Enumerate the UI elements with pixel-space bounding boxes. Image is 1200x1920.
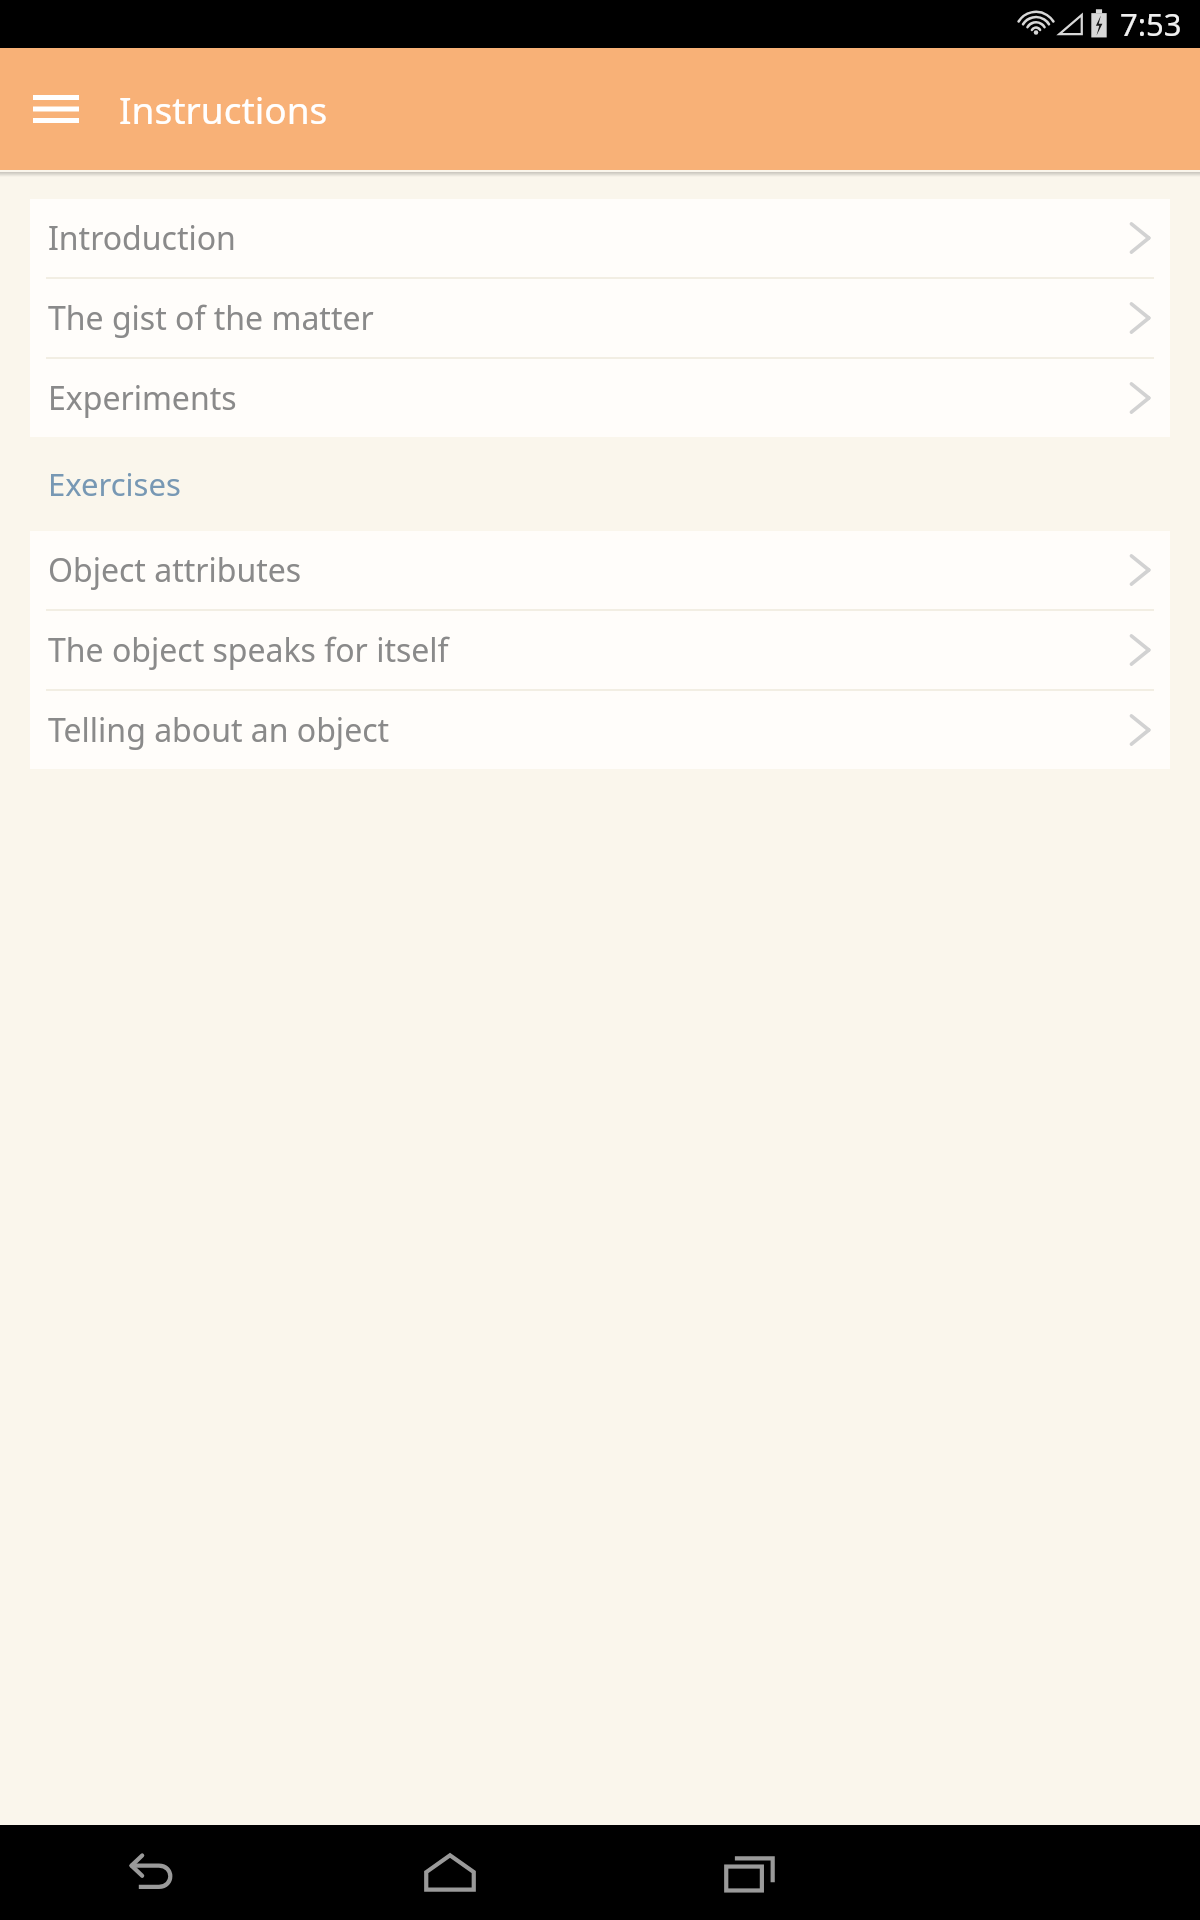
staticText: Experiments	[48, 376, 1126, 420]
button[interactable]: The gist of the matter	[30, 279, 1170, 357]
staticText: Telling about an object	[48, 708, 1126, 752]
button[interactable]: Recent apps	[600, 1825, 900, 1920]
staticText: 7:53	[1120, 3, 1182, 45]
staticText: The object speaks for itself	[48, 628, 1126, 672]
staticText: The gist of the matter	[48, 296, 1126, 340]
button[interactable]: Object attributes	[30, 531, 1170, 609]
button[interactable]: Back	[0, 1825, 300, 1920]
button[interactable]: Experiments	[30, 359, 1170, 437]
button[interactable]: Introduction	[30, 199, 1170, 277]
staticText: Instructions	[119, 84, 328, 134]
button[interactable]: Open navigation menu	[14, 67, 98, 151]
staticText: Exercises	[48, 463, 181, 505]
staticText: Object attributes	[48, 548, 1126, 592]
staticText: Introduction	[48, 216, 1126, 260]
button[interactable]: Telling about an object	[30, 691, 1170, 769]
button[interactable]: Home	[300, 1825, 600, 1920]
button[interactable]: The object speaks for itself	[30, 611, 1170, 689]
